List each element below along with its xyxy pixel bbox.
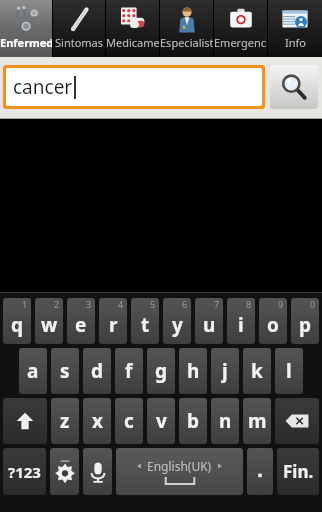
staticText: k: [251, 358, 263, 384]
staticText: u: [203, 312, 216, 338]
staticText: Info: [285, 35, 306, 50]
button[interactable]: 6: [163, 298, 191, 344]
button[interactable]: Shift: [3, 398, 47, 444]
button[interactable]: n: [211, 398, 239, 444]
button[interactable]: z: [51, 398, 79, 444]
button[interactable]: 9: [259, 298, 287, 344]
button[interactable]: 4: [99, 298, 127, 344]
button[interactable]: x: [83, 398, 111, 444]
staticText: s: [60, 358, 70, 384]
button[interactable]: h: [179, 348, 207, 394]
staticText: d: [91, 358, 104, 384]
button[interactable]: 5: [131, 298, 159, 344]
staticText: m: [248, 408, 267, 434]
staticText: Medicamentos: [106, 35, 160, 50]
button[interactable]: d: [83, 348, 111, 394]
button[interactable]: 3: [67, 298, 95, 344]
staticText: Enfermedades: [0, 35, 53, 50]
staticText: r: [109, 312, 118, 338]
staticText: 1: [22, 298, 28, 310]
button[interactable]: Emergencias: [214, 0, 268, 57]
staticText: 8: [246, 298, 252, 310]
button[interactable]: cancer: [6, 68, 262, 106]
button[interactable]: j: [211, 348, 239, 394]
button[interactable]: 8: [227, 298, 255, 344]
button[interactable]: a: [19, 348, 47, 394]
staticText: f: [125, 358, 133, 384]
staticText: 9: [278, 298, 284, 310]
staticText: Sintomas: [55, 35, 104, 50]
staticText: n: [219, 408, 232, 434]
staticText: x: [92, 408, 103, 434]
button[interactable]: Backspace: [275, 398, 319, 444]
staticText: c: [124, 408, 134, 434]
button[interactable]: Space, English (UK): [116, 448, 243, 495]
button[interactable]: Fin.: [277, 448, 319, 495]
button[interactable]: l: [275, 348, 303, 394]
staticText: z: [60, 408, 70, 434]
button[interactable]: c: [115, 398, 143, 444]
button[interactable]: 0: [291, 298, 319, 344]
staticText: 7: [214, 298, 220, 310]
button[interactable]: k: [243, 348, 271, 394]
button[interactable]: Search: [270, 65, 318, 109]
staticText: i: [238, 312, 244, 338]
button[interactable]: 2: [35, 298, 63, 344]
staticText: h: [187, 358, 200, 384]
staticText: 2: [54, 298, 60, 310]
staticText: b: [187, 408, 200, 434]
staticText: 6: [182, 298, 188, 310]
staticText: ?123: [8, 462, 41, 482]
button[interactable]: Settings: [50, 448, 79, 495]
staticText: q: [11, 312, 24, 338]
staticText: p: [299, 312, 312, 338]
staticText: 3: [86, 298, 92, 310]
staticText: 5: [150, 298, 156, 310]
button[interactable]: Especialistas: [160, 0, 214, 57]
staticText: cancer: [13, 74, 73, 100]
button[interactable]: 7: [195, 298, 223, 344]
staticText: English(UK): [147, 458, 212, 474]
staticText: o: [267, 312, 279, 338]
button[interactable]: f: [115, 348, 143, 394]
staticText: Emergencias: [214, 35, 268, 50]
staticText: j: [222, 358, 228, 384]
button[interactable]: Enfermedades: [0, 0, 53, 57]
button[interactable]: s: [51, 348, 79, 394]
button[interactable]: b: [179, 398, 207, 444]
button[interactable]: g: [147, 348, 175, 394]
staticText: g: [155, 358, 168, 384]
staticText: a: [27, 358, 39, 384]
staticText: l: [286, 358, 292, 384]
button[interactable]: Period: [247, 448, 273, 495]
button[interactable]: Voice input: [83, 448, 112, 495]
staticText: Especialistas: [160, 35, 214, 50]
button[interactable]: m: [243, 398, 271, 444]
button[interactable]: Info: [268, 0, 322, 57]
staticText: y: [172, 312, 183, 338]
button[interactable]: ?123: [3, 448, 46, 495]
staticText: 0: [310, 298, 316, 310]
staticText: w: [41, 312, 58, 338]
button[interactable]: v: [147, 398, 175, 444]
staticText: 4: [118, 298, 124, 310]
button[interactable]: Medicamentos: [106, 0, 160, 57]
staticText: t: [141, 312, 150, 338]
staticText: Fin.: [283, 460, 314, 483]
staticText: v: [156, 408, 167, 434]
button[interactable]: 1: [3, 298, 31, 344]
staticText: e: [75, 312, 87, 338]
button[interactable]: Sintomas: [53, 0, 106, 57]
